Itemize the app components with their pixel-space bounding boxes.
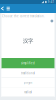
button[interactable]: pinyin [1, 78, 54, 87]
button[interactable]: traditional [1, 68, 54, 78]
staticText: pinyin [23, 81, 32, 84]
staticText: traditional [21, 71, 35, 75]
staticText: Choose the correct translation. [2, 14, 45, 18]
staticText: 汉字 [23, 38, 33, 44]
staticText: radical [24, 90, 32, 94]
button[interactable]: radical [1, 87, 54, 97]
staticText: simplified [21, 61, 35, 65]
staticText: 9:41 [48, 0, 55, 4]
button[interactable]: Menu [5, 4, 11, 13]
button[interactable]: simplified [1, 58, 54, 68]
button[interactable]: Back [0, 4, 5, 13]
button[interactable]: Play audio [49, 18, 54, 24]
